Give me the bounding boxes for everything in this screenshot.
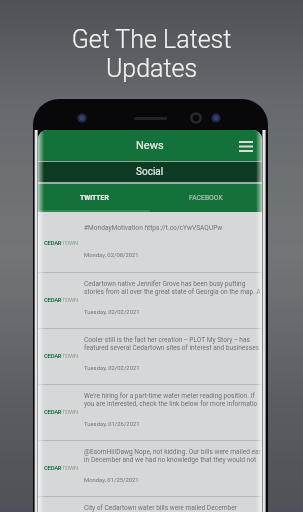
staticText: TWITTER (80, 194, 109, 202)
staticText: Cooler still is the fact her creation --… (84, 336, 250, 344)
button[interactable]: CEDAR (38, 497, 262, 512)
staticText: stories from all over the great state of… (84, 288, 261, 296)
staticText: Tuesday, 02/02/2021 (84, 365, 140, 372)
staticText: CEDAR (44, 353, 62, 360)
staticText: CEDAR (44, 240, 62, 247)
staticText: City of Cedartown water bills were maile… (84, 504, 237, 512)
staticText: News (136, 139, 164, 152)
staticText: you are interested, check the link below… (84, 400, 258, 408)
staticText: Get The Latest Updates (0, 25, 303, 83)
staticText: Monday, 01/25/2021 (84, 477, 139, 484)
staticText: Cedartown native Jennifer Grove has been… (84, 280, 246, 288)
button[interactable]: CEDAR (38, 273, 262, 328)
button[interactable]: TWITTER (38, 184, 150, 212)
staticText: FACEBOOK (189, 194, 223, 202)
staticText: Tuesday, 01/26/2021 (84, 421, 140, 428)
staticText: CEDAR (44, 297, 62, 304)
staticText: CEDAR (44, 409, 62, 416)
button[interactable]: CEDAR (38, 214, 262, 272)
staticText: TOWN (62, 465, 78, 472)
button[interactable]: CEDAR (38, 441, 262, 496)
staticText: @EsomHillDawg Nope, not kidding. Our bil… (84, 448, 261, 456)
button[interactable]: Menu (235, 135, 257, 157)
staticText: We're hiring for a part-time water meter… (84, 392, 255, 400)
staticText: TOWN (62, 297, 78, 304)
staticText: in December and we had no knowledge that… (84, 456, 257, 464)
button[interactable]: CEDAR (38, 385, 262, 440)
staticText: TOWN (62, 353, 78, 360)
staticText: Monday, 02/08/2021 (84, 252, 139, 259)
staticText: Social (136, 166, 164, 178)
button[interactable]: CEDAR (38, 329, 262, 384)
staticText: #MondayMotivation https://t.co/cYwVSAQUP… (84, 224, 223, 232)
staticText: featured several Cedartown sites of inte… (84, 344, 260, 352)
staticText: TOWN (62, 409, 78, 416)
button[interactable]: FACEBOOK (150, 184, 262, 212)
staticText: Tuesday, 02/02/2021 (84, 309, 140, 316)
staticText: TOWN (62, 240, 78, 247)
staticText: CEDAR (44, 465, 62, 472)
